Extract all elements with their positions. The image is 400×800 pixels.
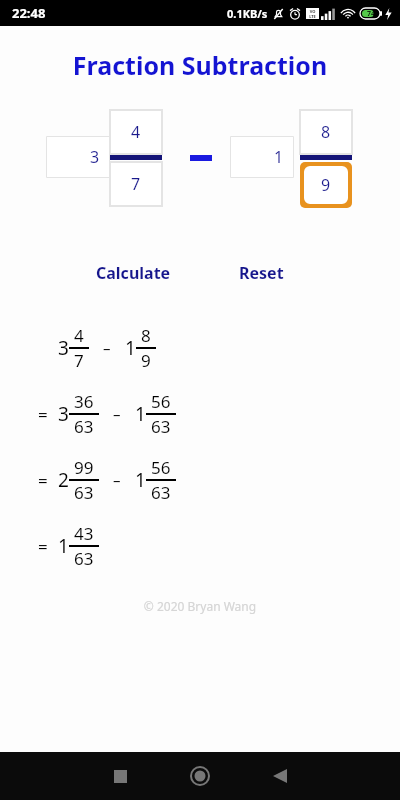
staticText: = <box>38 469 48 492</box>
staticText: 63 <box>74 547 94 570</box>
staticText: 4 <box>131 121 141 143</box>
staticText: 3 <box>58 401 69 427</box>
button[interactable]: Home <box>180 756 220 796</box>
staticText: 9 <box>141 349 151 372</box>
staticText: – <box>113 404 121 424</box>
staticText: 3 <box>90 146 100 168</box>
staticText: 8 <box>141 324 151 347</box>
staticText: 8 <box>321 121 331 143</box>
staticText: 1 <box>135 401 146 427</box>
staticText: – <box>103 338 111 358</box>
staticText: 9 <box>321 174 331 196</box>
staticText: 56 <box>151 456 171 479</box>
staticText: = <box>38 403 48 426</box>
staticText: 4 <box>74 324 84 347</box>
staticText: 36 <box>74 390 94 413</box>
staticText: 1 <box>125 335 136 361</box>
staticText: VO LTE <box>309 9 316 19</box>
staticText: 74 <box>367 9 376 19</box>
button[interactable]: 9 <box>300 162 352 208</box>
staticText: Calculate <box>96 262 171 284</box>
staticText: – <box>113 470 121 490</box>
staticText: Reset <box>239 262 284 284</box>
button[interactable]: Back <box>260 756 300 796</box>
staticText: 22:48 <box>12 4 46 22</box>
staticText: Fraction Subtraction <box>0 48 400 82</box>
staticText: 7 <box>131 173 141 195</box>
staticText: 63 <box>151 481 171 504</box>
staticText: 2 <box>58 467 69 493</box>
staticText: 63 <box>151 415 171 438</box>
staticText: 63 <box>74 415 94 438</box>
staticText: 99 <box>74 456 94 479</box>
staticText: 43 <box>74 522 94 545</box>
button[interactable]: 1 <box>230 136 294 178</box>
button[interactable]: Calculate <box>90 260 177 286</box>
staticText: 7 <box>74 349 84 372</box>
button[interactable]: 8 <box>300 110 352 154</box>
button[interactable]: Recent apps <box>100 756 140 796</box>
staticText: 1 <box>58 533 69 559</box>
staticText: = <box>38 535 48 558</box>
staticText: 56 <box>151 390 171 413</box>
staticText: © 2020 Bryan Wang <box>0 598 400 614</box>
button[interactable]: 7 <box>110 162 162 206</box>
staticText: 1 <box>135 467 146 493</box>
staticText: 0.1KB/s <box>227 6 268 21</box>
staticText: 63 <box>74 481 94 504</box>
button[interactable]: 3 <box>46 136 110 178</box>
staticText: 3 <box>58 335 69 361</box>
button[interactable]: 4 <box>110 110 162 154</box>
button[interactable]: Reset <box>233 260 290 286</box>
staticText: 1 <box>274 146 284 168</box>
